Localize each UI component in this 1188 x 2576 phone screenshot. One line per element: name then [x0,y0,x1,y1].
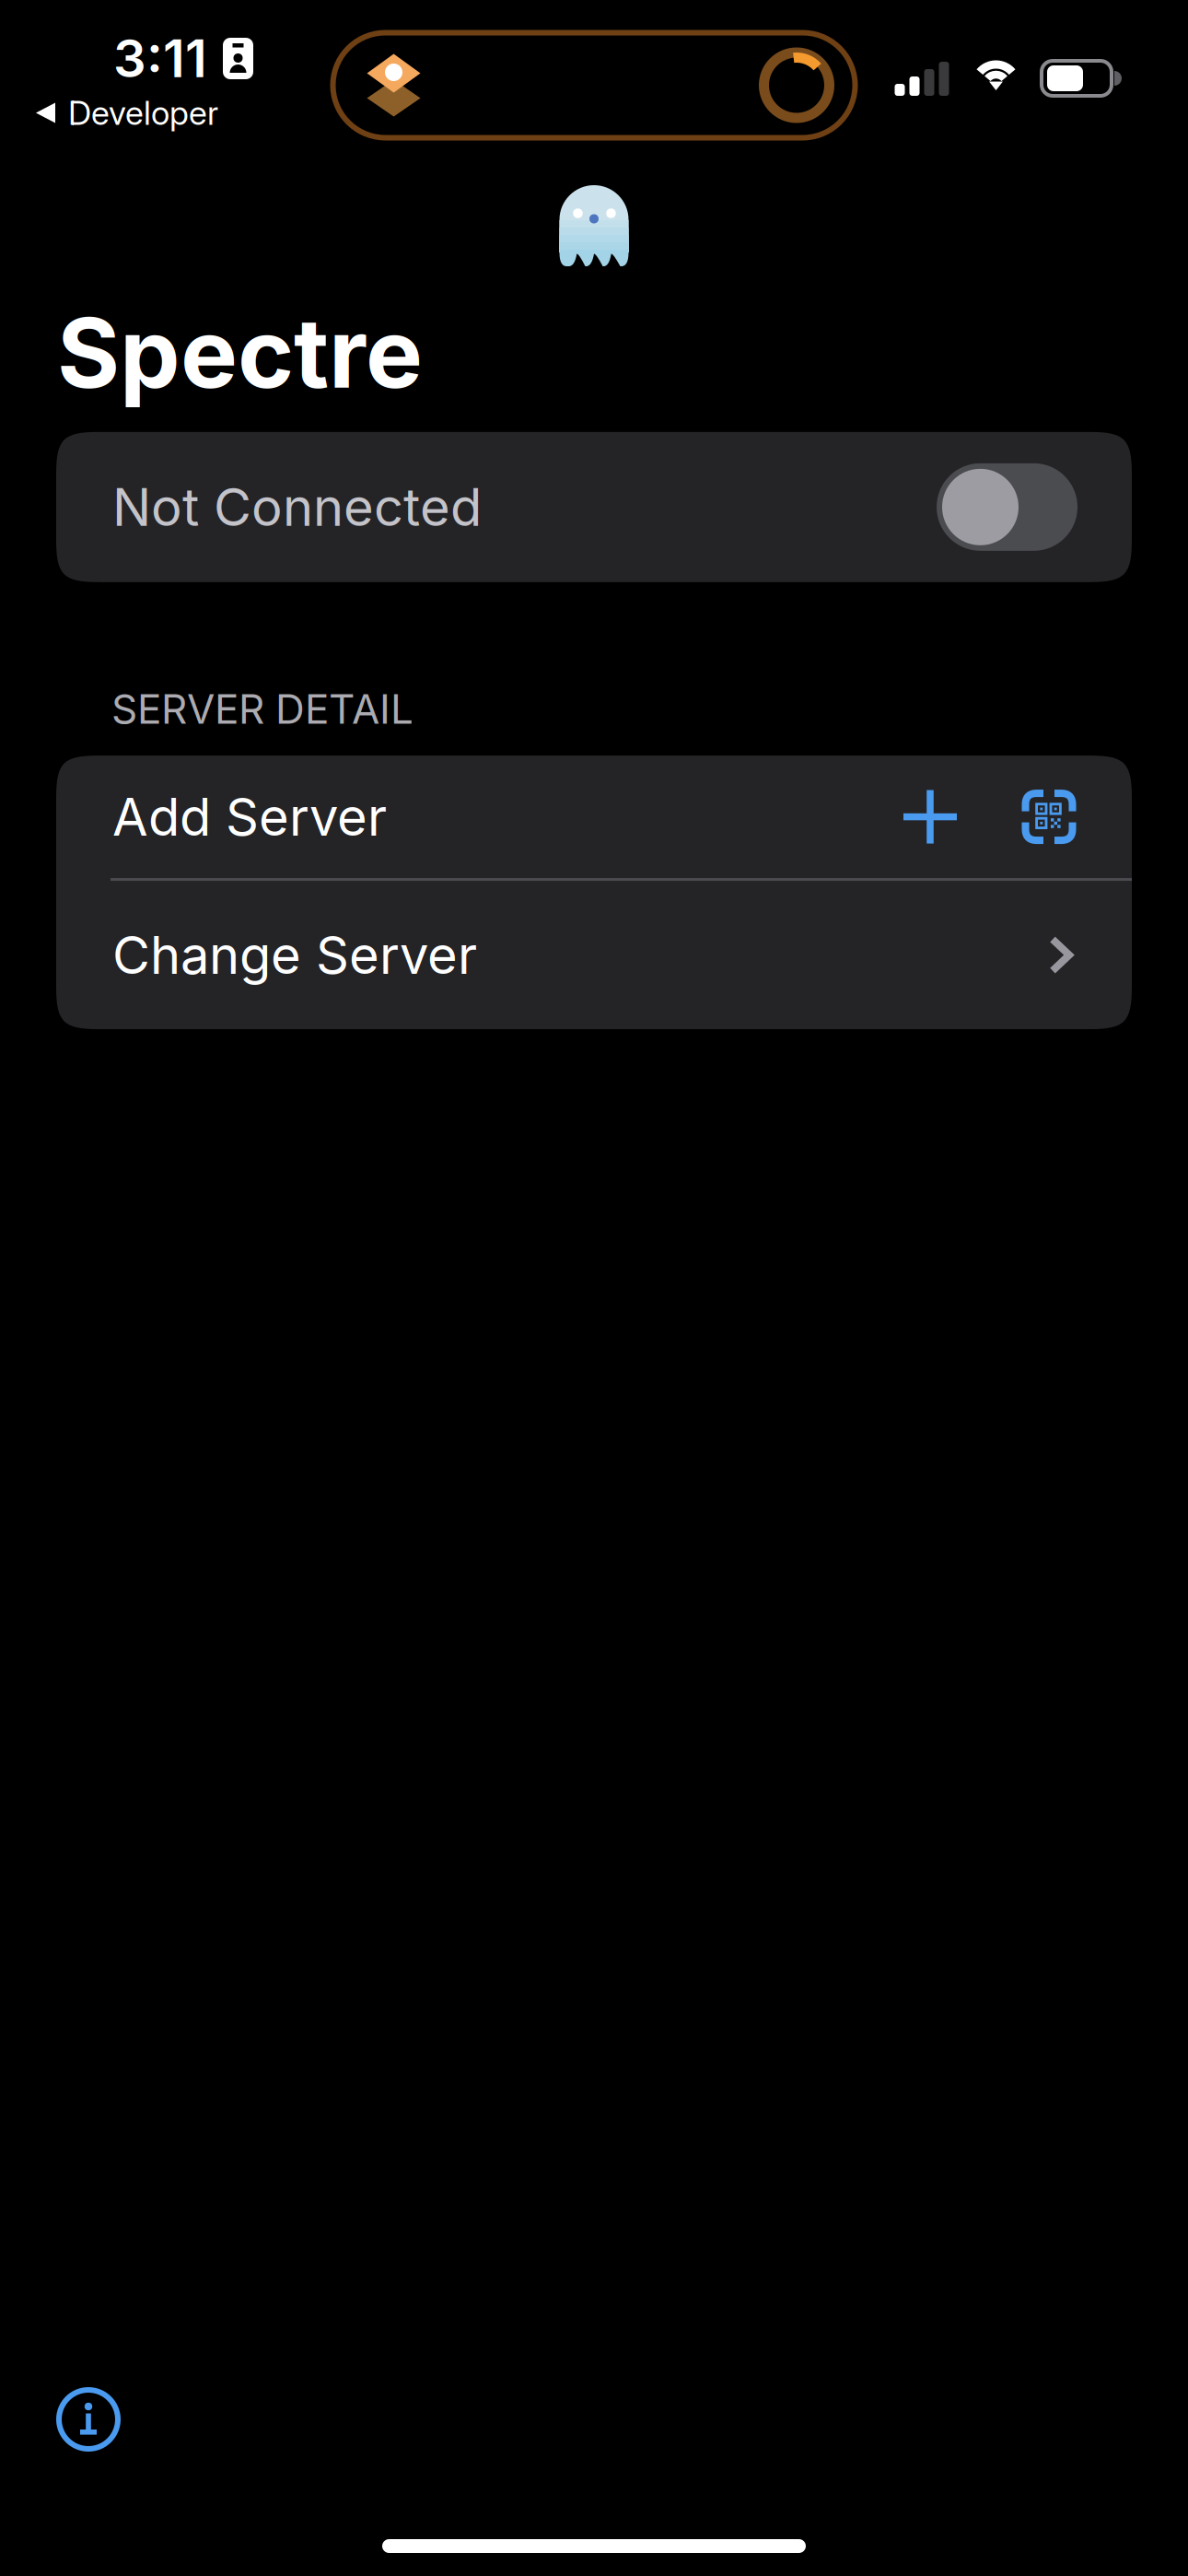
staticText: SERVER DETAIL [111,684,413,733]
staticText: Developer [68,93,218,133]
staticText: Change Server [112,924,477,986]
button[interactable]: Not Connected [56,432,1132,582]
staticText: 3:11 [113,27,207,90]
staticText: Spectre [57,295,423,411]
button[interactable]: Add Server [56,756,1132,878]
staticText: Not Connected [112,476,482,538]
staticText: Add Server [112,786,387,848]
button[interactable]: Change Server [56,881,1132,1029]
button[interactable]: Information [44,2375,133,2464]
